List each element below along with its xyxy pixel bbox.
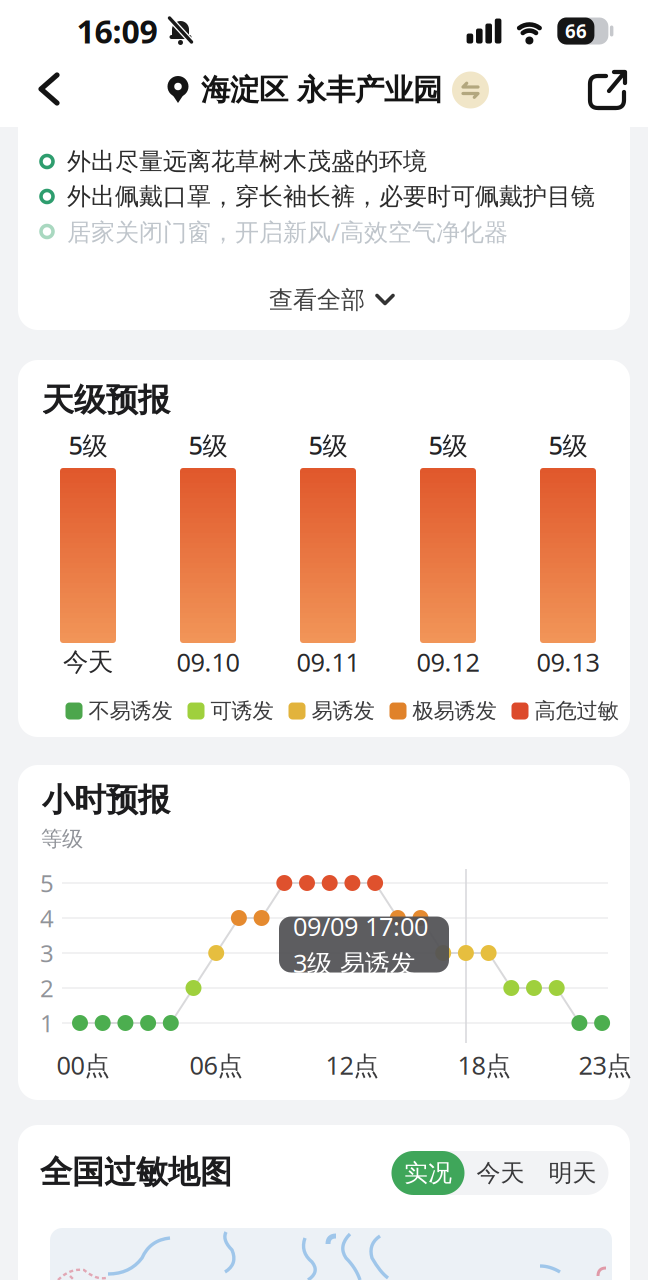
- staticText: 高危过敏: [534, 698, 618, 724]
- staticText: 00点: [56, 1048, 109, 1082]
- button[interactable]: 查看全部: [269, 285, 395, 315]
- staticText: 今天: [476, 1158, 524, 1188]
- staticText: 23点: [578, 1048, 631, 1082]
- staticText: 3: [40, 937, 54, 969]
- staticText: 09/09 17:00: [293, 909, 428, 943]
- staticText: 海淀区 永丰产业园: [201, 72, 442, 108]
- staticText: 5级: [428, 428, 467, 462]
- staticText: 查看全部: [269, 285, 365, 315]
- staticText: 居家关闭门窗，开启新风/高效空气净化器: [67, 216, 508, 247]
- button[interactable]: [32, 68, 66, 110]
- button[interactable]: 今天: [464, 1151, 536, 1195]
- staticText: 等级: [41, 826, 83, 852]
- staticText: 5: [40, 867, 54, 899]
- staticText: 极易诱发: [412, 698, 496, 724]
- staticText: 12点: [325, 1048, 378, 1082]
- staticText: 5级: [308, 428, 347, 462]
- staticText: 5级: [68, 428, 107, 462]
- staticText: 外出佩戴口罩，穿长袖长裤，必要时可佩戴护目镜: [67, 182, 595, 211]
- staticText: 易诱发: [311, 698, 374, 724]
- staticText: 天级预报: [42, 380, 170, 420]
- staticText: 不易诱发: [88, 698, 172, 724]
- staticText: 09.12: [416, 645, 479, 679]
- staticText: 18点: [457, 1048, 510, 1082]
- staticText: 3级 易诱发: [293, 946, 415, 980]
- staticText: 09.13: [536, 645, 599, 679]
- staticText: 06点: [189, 1048, 242, 1082]
- staticText: 16:09: [76, 10, 157, 52]
- staticText: 66: [565, 19, 587, 43]
- staticText: 外出尽量远离花草树木茂盛的环境: [67, 147, 427, 176]
- staticText: 5级: [548, 428, 587, 462]
- button[interactable]: [584, 66, 630, 112]
- staticText: 可诱发: [210, 698, 273, 724]
- staticText: 1: [40, 1007, 54, 1039]
- staticText: 2: [40, 972, 54, 1004]
- button[interactable]: 明天: [536, 1151, 608, 1195]
- staticText: 全国过敏地图: [40, 1152, 232, 1192]
- button[interactable]: 实况: [391, 1151, 464, 1195]
- staticText: 09.11: [296, 645, 359, 679]
- staticText: 今天: [63, 646, 113, 677]
- staticText: 明天: [548, 1158, 596, 1188]
- staticText: 小时预报: [42, 780, 170, 820]
- staticText: 4: [40, 902, 54, 934]
- button[interactable]: 海淀区 永丰产业园: [165, 71, 489, 108]
- staticText: 实况: [404, 1158, 452, 1188]
- staticText: 09.10: [176, 645, 239, 679]
- staticText: 5级: [188, 428, 227, 462]
